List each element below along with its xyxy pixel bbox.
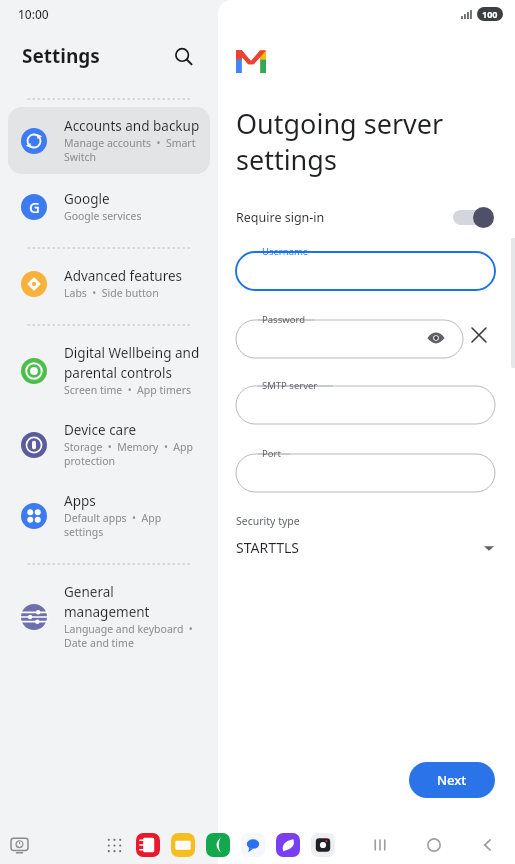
staticText: Username <box>262 245 309 258</box>
button[interactable]: Port <box>236 446 495 492</box>
button[interactable]: Show password <box>423 325 449 351</box>
staticText: Storage • Memory • App protection <box>64 440 202 468</box>
staticText: Google <box>64 190 110 208</box>
button[interactable]: Device care <box>8 411 210 478</box>
staticText: Device care <box>64 421 137 439</box>
staticText: Manage accounts • Smart Switch <box>64 136 202 164</box>
button[interactable]: Notifications <box>4 830 34 860</box>
staticText: Labs • Side button <box>64 286 159 300</box>
button[interactable]: Username <box>236 244 495 290</box>
staticText: SMTP server <box>262 379 318 392</box>
button[interactable]: General management <box>8 573 210 660</box>
staticText: Next <box>437 771 467 789</box>
staticText: Digital Wellbeing and parental controls <box>64 344 202 382</box>
button[interactable]: Search settings <box>166 39 200 73</box>
staticText: Port <box>262 447 281 460</box>
staticText: Security type <box>236 514 300 528</box>
button[interactable]: Phone <box>205 832 231 858</box>
button[interactable]: Apps <box>8 482 210 549</box>
staticText: Require sign-in <box>236 209 325 226</box>
button[interactable]: Recent apps <box>367 832 393 858</box>
staticText: General management <box>64 583 202 621</box>
staticText: Screen time • App timers <box>64 383 192 397</box>
button[interactable]: Internet <box>275 832 301 858</box>
button[interactable]: Notes <box>135 832 161 858</box>
staticText: Default apps • App settings <box>64 511 202 539</box>
button[interactable]: My Files <box>170 832 196 858</box>
staticText: STARTTLS <box>236 538 300 557</box>
staticText: Google services <box>64 209 142 223</box>
button[interactable] <box>453 206 495 228</box>
staticText: 100 <box>482 8 498 20</box>
staticText: Language and keyboard • Date and time <box>64 622 202 650</box>
button[interactable]: STARTTLS <box>236 538 495 557</box>
button[interactable]: All apps <box>102 833 126 857</box>
button[interactable]: Accounts and backup <box>8 107 210 174</box>
button[interactable]: Advanced features <box>8 257 210 310</box>
staticText: 10:00 <box>18 6 49 22</box>
button[interactable]: Password <box>236 312 463 358</box>
staticText: Password <box>262 313 305 326</box>
button[interactable]: Clear password <box>463 319 495 351</box>
button[interactable]: Camera <box>310 832 336 858</box>
button[interactable]: SMTP server <box>236 378 495 424</box>
button[interactable]: Require sign-in <box>236 206 495 228</box>
staticText: Outgoing server settings <box>236 105 495 178</box>
staticText: G <box>29 197 40 217</box>
staticText: Advanced features <box>64 267 183 285</box>
button[interactable]: Home <box>421 832 447 858</box>
staticText: Settings <box>22 43 100 69</box>
button[interactable]: G <box>8 180 210 233</box>
button[interactable]: Back <box>475 832 501 858</box>
button[interactable]: Messages <box>240 832 266 858</box>
button[interactable]: Next <box>409 762 495 798</box>
staticText: Accounts and backup <box>64 117 200 135</box>
button[interactable]: Digital Wellbeing and parental controls <box>8 334 210 407</box>
staticText: Apps <box>64 492 96 510</box>
